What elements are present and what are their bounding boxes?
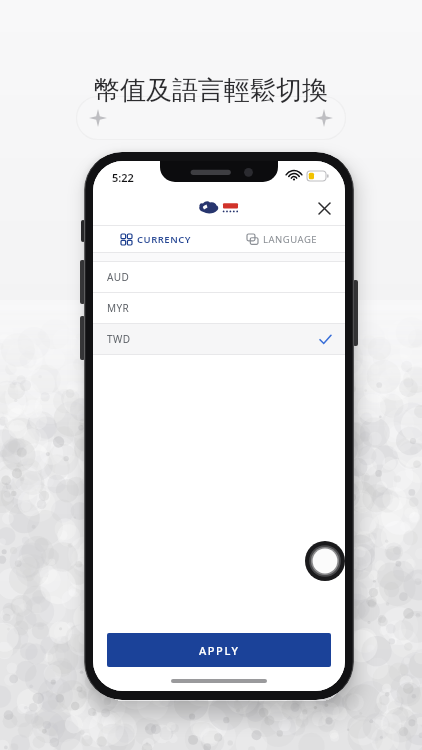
staticText: CURRENCY <box>137 233 191 246</box>
button[interactable]: APPLY <box>107 633 331 667</box>
button[interactable]: LANGUAGE <box>219 226 345 252</box>
staticText: MYR <box>107 301 130 315</box>
staticText: TWD <box>107 332 131 346</box>
button[interactable]: Close <box>311 195 337 221</box>
staticText: LANGUAGE <box>263 233 318 246</box>
button[interactable]: AUD <box>93 262 345 292</box>
staticText: 5:22 <box>112 170 134 185</box>
button[interactable]: CURRENCY <box>93 226 219 252</box>
staticText: 幣值及語言輕鬆切換 <box>0 74 422 107</box>
staticText: AUD <box>107 270 130 284</box>
staticText: APPLY <box>199 643 240 658</box>
button[interactable]: TWD <box>93 324 345 354</box>
button[interactable]: MYR <box>93 293 345 323</box>
